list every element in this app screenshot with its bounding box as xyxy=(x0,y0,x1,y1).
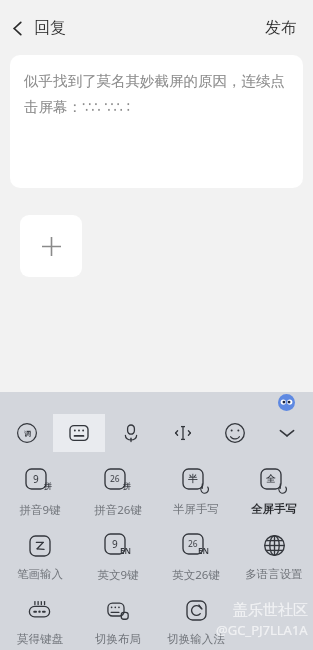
staticText: 调 xyxy=(24,429,31,438)
staticText: 切换输入法 xyxy=(167,632,225,646)
staticText: 莫得键盘 xyxy=(17,632,63,646)
button[interactable]: 似乎找到了莫名其妙截屏的原因，连续点击屏幕：∵∴ ∵∴ ∶ xyxy=(10,55,303,188)
other: Back xyxy=(12,20,23,37)
button[interactable]: Add attachment xyxy=(20,215,82,277)
staticText: 半屏手写 xyxy=(173,502,219,516)
staticText: 拼 xyxy=(44,481,52,491)
staticText: 全屏手写 xyxy=(251,502,297,516)
button[interactable]: 9 xyxy=(79,525,157,590)
staticText: 半 xyxy=(188,473,198,485)
staticText: 26 xyxy=(110,473,120,485)
staticText: 9 xyxy=(33,472,39,486)
staticText: 26 xyxy=(188,538,198,550)
button[interactable]: Back xyxy=(0,10,76,46)
staticText: 盖乐世社区 xyxy=(233,601,308,620)
button[interactable]: 全 xyxy=(235,460,313,525)
button[interactable]: 多语言设置 xyxy=(235,525,313,590)
staticText: 发布 xyxy=(265,18,297,38)
button[interactable]: Keyboard xyxy=(53,414,105,452)
staticText: @GC_PJ7LLA1A xyxy=(216,621,308,639)
button[interactable]: 发布 xyxy=(249,8,313,48)
staticText: 多语言设置 xyxy=(245,567,303,581)
button[interactable]: 9 xyxy=(0,460,79,525)
button[interactable]: 莫得键盘 xyxy=(0,590,79,650)
button[interactable]: Hide keyboard xyxy=(261,414,313,452)
staticText: 9 xyxy=(112,537,118,551)
button[interactable]: 笔画输入 xyxy=(0,525,79,590)
staticText: 笔画输入 xyxy=(17,567,63,581)
staticText: 英文26键 xyxy=(172,567,220,583)
staticText: 似乎找到了莫名其妙截屏的原因，连续点击屏幕：∵∴ ∵∴ ∶ xyxy=(24,72,289,116)
staticText: EN xyxy=(198,545,209,556)
button[interactable]: Emoji xyxy=(209,414,261,452)
button[interactable]: Move cursor xyxy=(157,414,209,452)
staticText: 全 xyxy=(266,473,276,485)
button[interactable]: 切换布局 xyxy=(79,590,157,650)
staticText: 拼 xyxy=(123,481,131,491)
staticText: 回复 xyxy=(34,18,66,38)
staticText: 英文9键 xyxy=(97,567,139,583)
staticText: 拼音26键 xyxy=(94,502,142,518)
button[interactable]: Voice input xyxy=(105,414,157,452)
button[interactable]: 半 xyxy=(157,460,235,525)
button[interactable]: 切换输入法 xyxy=(157,590,235,650)
button[interactable]: 26 xyxy=(79,460,157,525)
staticText: EN xyxy=(120,545,131,556)
button[interactable]: Assistant xyxy=(278,394,295,411)
button[interactable]: 26 xyxy=(157,525,235,590)
button[interactable]: Input language xyxy=(0,414,53,452)
staticText: 切换布局 xyxy=(95,632,141,646)
staticText: 拼音9键 xyxy=(19,502,61,518)
